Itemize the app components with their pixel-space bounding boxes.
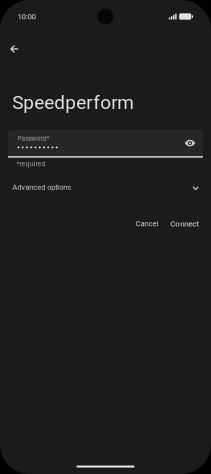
button[interactable]: Show password [181,135,198,152]
button[interactable]: Advanced options [0,178,211,197]
staticText: Cancel [136,220,159,228]
staticText: Speedperform [12,91,134,114]
button[interactable]: Connect [164,215,206,232]
staticText: Connect [170,219,199,228]
staticText: Advanced options [12,183,71,191]
staticText: *required [17,160,46,168]
button[interactable]: Back [1,33,27,65]
button[interactable]: Cancel [128,216,164,232]
staticText: 10:00 [17,12,35,21]
staticText: Password* [17,135,49,142]
